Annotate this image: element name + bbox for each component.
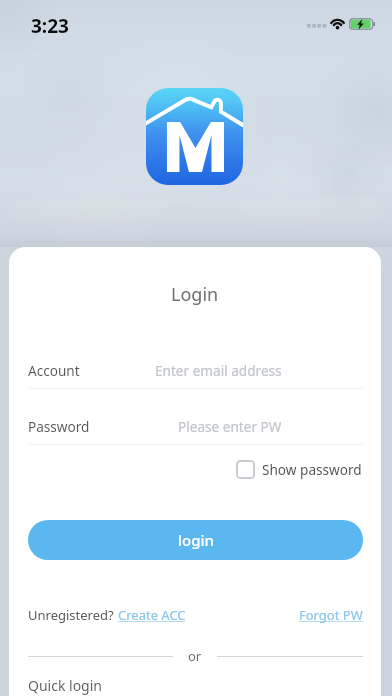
staticText: Unregistered? xyxy=(28,606,118,624)
button[interactable]: Account xyxy=(28,355,363,389)
staticText: Password xyxy=(28,417,90,436)
button[interactable]: Unregistered? xyxy=(28,606,186,624)
staticText: login xyxy=(178,530,214,550)
staticText: Enter email address xyxy=(155,361,282,380)
button[interactable]: Forgot PW xyxy=(299,606,363,624)
staticText: Login xyxy=(171,282,219,307)
button[interactable]: login xyxy=(28,520,363,560)
staticText: 3:23 xyxy=(31,13,69,39)
button[interactable]: Password xyxy=(28,411,363,445)
staticText: Quick login xyxy=(28,676,102,695)
staticText: Please enter PW xyxy=(178,417,282,436)
staticText: Create ACC xyxy=(118,606,186,624)
staticText: or xyxy=(188,647,202,665)
button[interactable]: Show password xyxy=(236,458,362,481)
other: Battery xyxy=(349,18,375,30)
staticText: Show password xyxy=(262,460,362,479)
other: Wi-Fi xyxy=(329,18,346,30)
staticText: Account xyxy=(28,361,80,380)
